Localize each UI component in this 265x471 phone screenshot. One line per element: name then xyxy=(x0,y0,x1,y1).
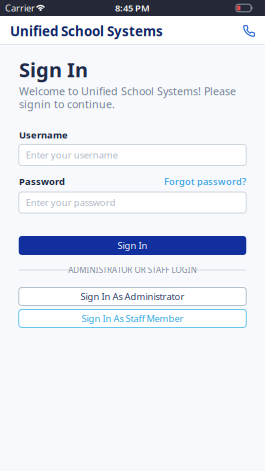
staticText: Forgot password? xyxy=(164,175,246,188)
staticText: Sign In xyxy=(19,56,88,83)
staticText: 8:45 PM xyxy=(115,2,150,14)
staticText: Enter your password xyxy=(26,196,116,209)
staticText: Sign In xyxy=(117,239,147,252)
staticText: Welcome to Unified School Systems! Pleas… xyxy=(19,84,236,98)
staticText: Sign In As Staff Member xyxy=(81,312,183,325)
button[interactable]: Sign In As Administrator xyxy=(19,287,246,305)
staticText: Username xyxy=(19,129,68,141)
button[interactable]: Sign In xyxy=(19,236,246,255)
staticText: Carrier xyxy=(5,2,35,14)
staticText: Sign In As Administrator xyxy=(80,290,184,303)
staticText: Enter your username xyxy=(26,149,118,161)
staticText: Unified School Systems xyxy=(10,22,163,40)
button[interactable]: Call xyxy=(236,18,262,44)
staticText: ADMINISTRATOR OR STAFF LOGIN xyxy=(68,265,197,275)
staticText: Password xyxy=(19,175,65,188)
button[interactable]: Sign In As Staff Member xyxy=(19,309,246,327)
staticText: signin to continue. xyxy=(19,97,115,111)
button[interactable]: Forgot password? xyxy=(164,175,246,188)
